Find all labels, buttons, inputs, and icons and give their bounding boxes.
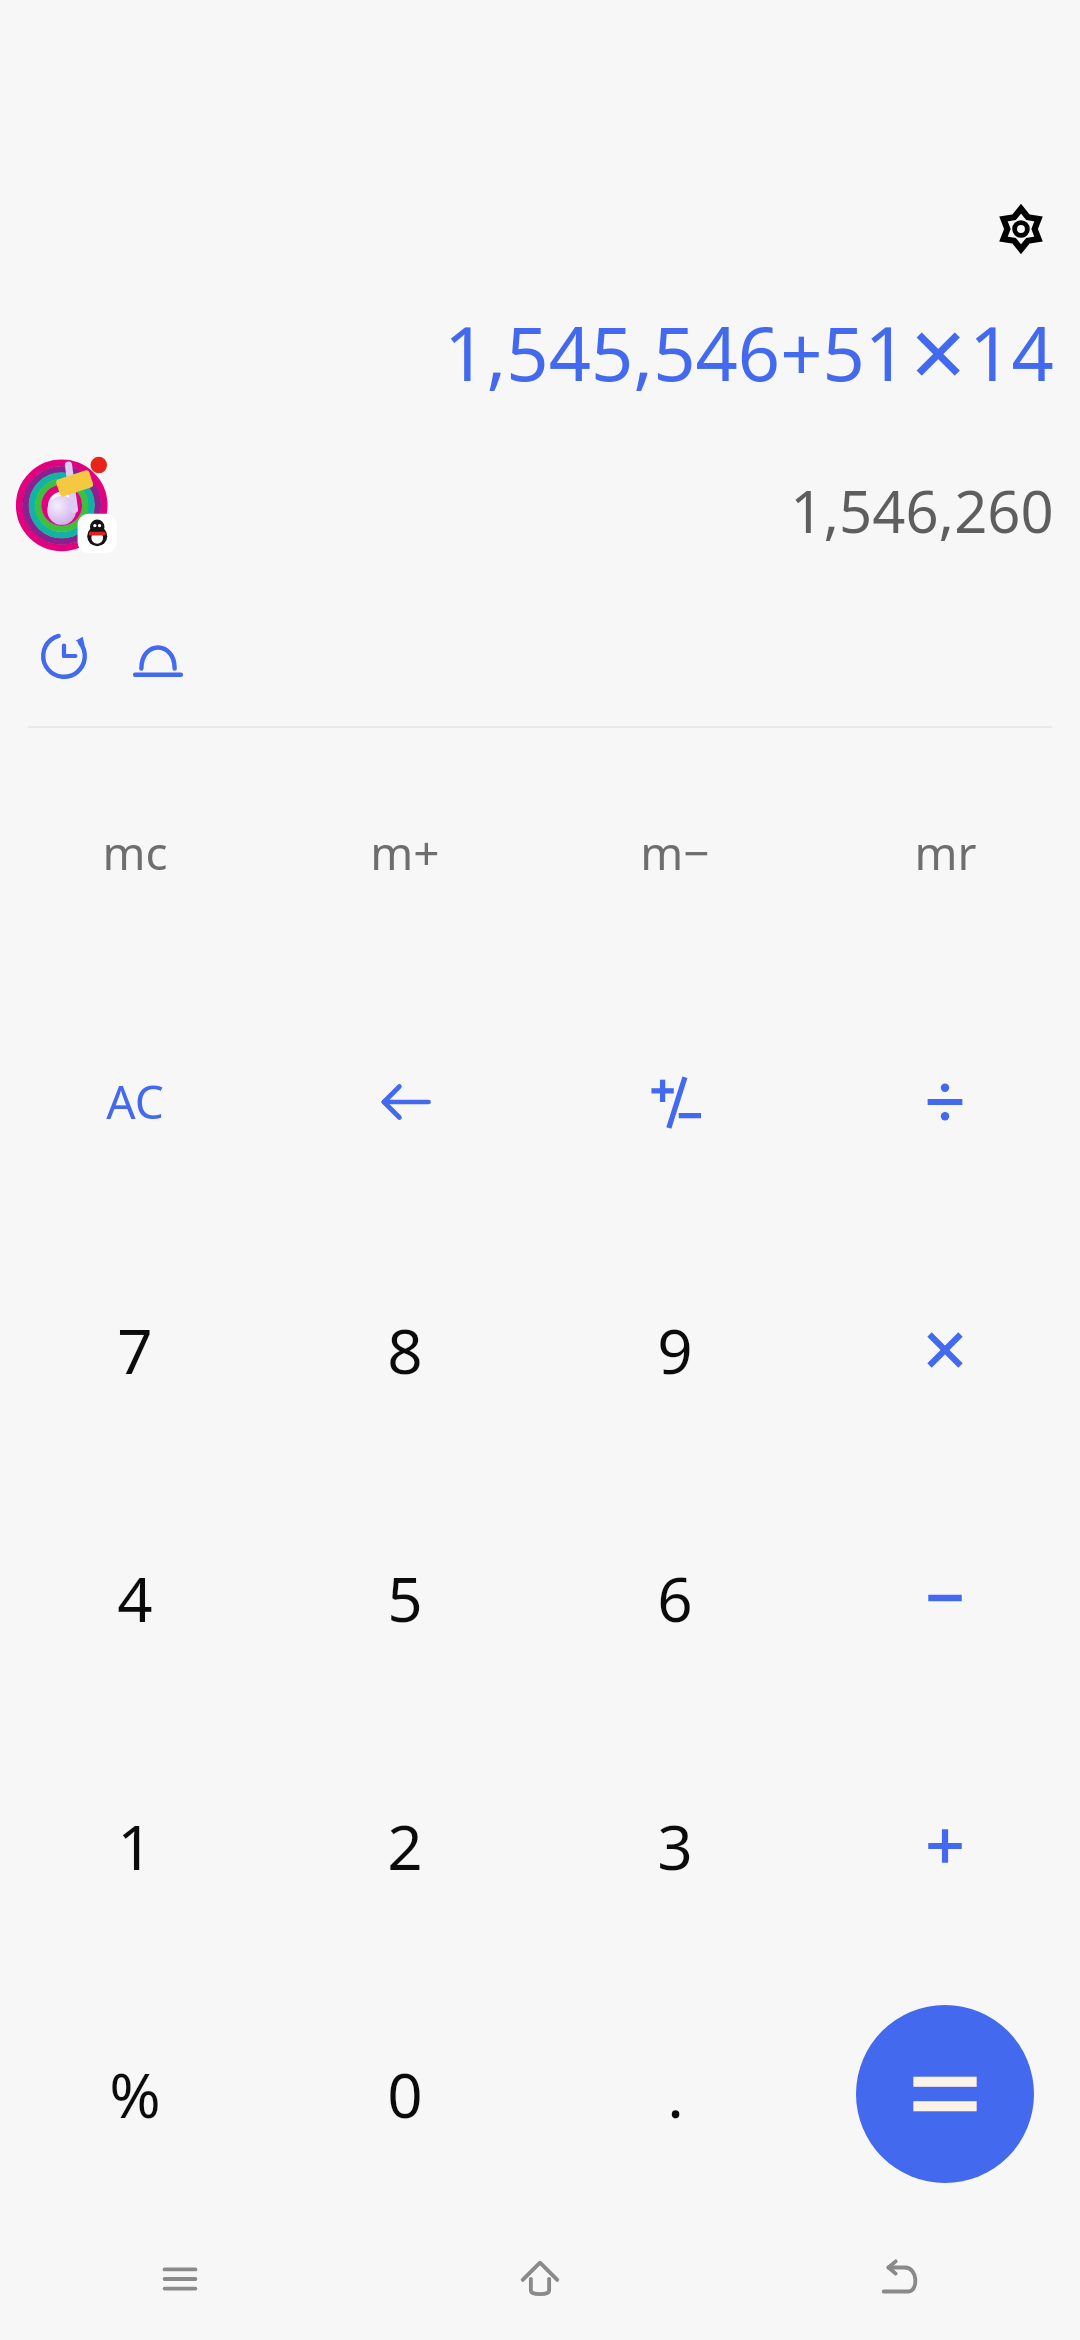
staticText: 1 [117,1804,153,1888]
button[interactable]: Equals [856,2005,1034,2183]
button[interactable]: 9 [540,1226,810,1474]
staticText: 4 [117,1556,153,1640]
button[interactable]: mr [810,728,1080,977]
button[interactable]: 7 [0,1226,270,1474]
button[interactable]: % [0,1970,270,2218]
button[interactable]: Divide [810,977,1080,1226]
button[interactable]: 2 [270,1722,540,1970]
button[interactable]: Settings [988,196,1054,262]
staticText: 1,546,260 [790,471,1054,550]
button[interactable]: Minus [810,1474,1080,1722]
button[interactable]: Backspace [270,977,540,1226]
staticText: % [109,2052,161,2136]
button[interactable]: 8 [270,1226,540,1474]
button[interactable]: Home [360,2218,720,2340]
staticText: 6 [657,1556,693,1640]
button[interactable]: m− [540,728,810,977]
staticText: . [667,2052,684,2136]
button[interactable]: 1 [0,1722,270,1970]
staticText: mr [914,821,977,884]
button[interactable]: AC [0,977,270,1226]
staticText: 3 [657,1804,693,1888]
button[interactable]: 0 [270,1970,540,2218]
button[interactable]: Formulas [114,612,202,700]
button[interactable]: m+ [270,728,540,977]
staticText: 1,545,546+51✕14 [444,302,1054,403]
staticText: 9 [657,1308,693,1392]
button[interactable]: . [540,1970,810,2218]
staticText: 2 [387,1804,423,1888]
button[interactable]: 4 [0,1474,270,1722]
button[interactable]: Back [720,2218,1080,2340]
staticText: 0 [387,2052,423,2136]
staticText: m+ [370,821,440,884]
button[interactable]: History [20,612,108,700]
button[interactable]: Plus [810,1722,1080,1970]
button[interactable]: Multiply [810,1226,1080,1474]
staticText: 7 [117,1308,153,1392]
staticText: AC [106,1070,164,1133]
button[interactable]: mc [0,728,270,977]
button[interactable]: Plus minus [540,977,810,1226]
staticText: 5 [387,1556,423,1640]
button[interactable]: Recents [0,2218,360,2340]
staticText: 8 [387,1308,423,1392]
button[interactable]: 5 [270,1474,540,1722]
button[interactable]: 6 [540,1474,810,1722]
button[interactable]: 3 [540,1722,810,1970]
staticText: m− [640,821,710,884]
staticText: mc [102,821,168,884]
button[interactable]: QQ Music floating window [14,446,120,552]
